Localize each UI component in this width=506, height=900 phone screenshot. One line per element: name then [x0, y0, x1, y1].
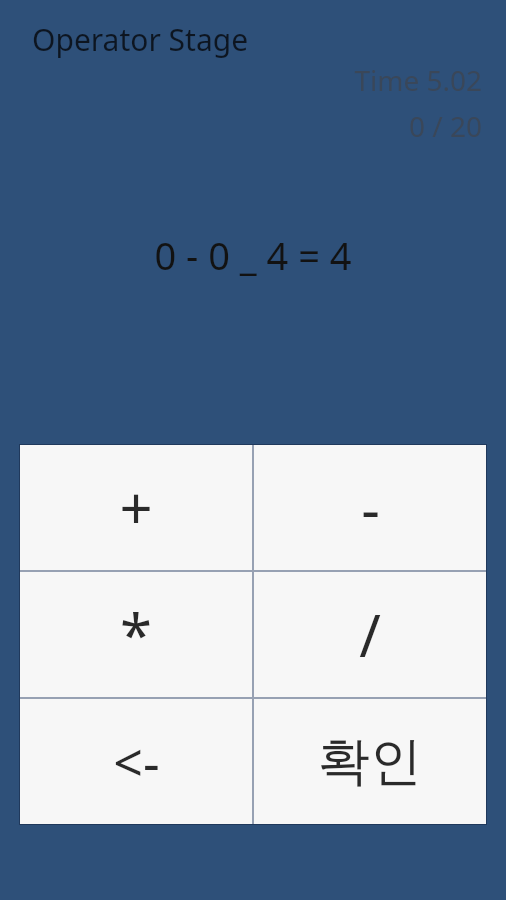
- button[interactable]: /: [254, 572, 486, 697]
- staticText: -: [361, 468, 380, 547]
- button[interactable]: <-: [20, 699, 252, 824]
- staticText: Time 5.02: [354, 61, 482, 99]
- staticText: 0 - 0 _ 4 = 4: [154, 229, 352, 281]
- staticText: <-: [113, 726, 160, 797]
- staticText: 확인: [318, 729, 422, 795]
- staticText: 0 / 20: [408, 107, 482, 145]
- staticText: +: [119, 468, 153, 547]
- button[interactable]: -: [254, 445, 486, 570]
- button[interactable]: 확인: [254, 699, 486, 824]
- button[interactable]: +: [20, 445, 252, 570]
- staticText: /: [359, 595, 381, 674]
- staticText: Operator Stage: [32, 19, 249, 60]
- button[interactable]: *: [20, 572, 252, 697]
- staticText: *: [120, 595, 152, 674]
